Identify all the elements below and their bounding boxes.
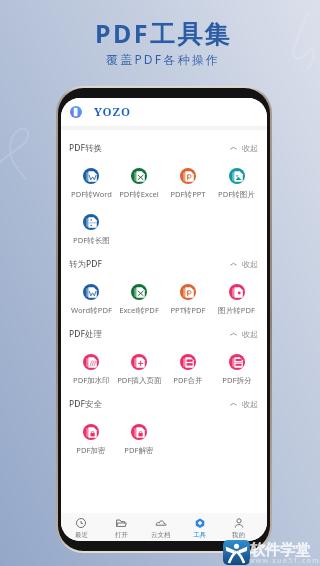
staticText: PDF处理: [69, 328, 102, 340]
button[interactable]: 云文档: [141, 513, 180, 539]
staticText: 覆盖PDF各种操作: [106, 51, 221, 67]
staticText: YOZO: [94, 104, 131, 120]
staticText: PDF转Word: [71, 189, 112, 199]
button[interactable]: 收起: [228, 397, 260, 411]
button[interactable]: Excel转PDF: [115, 276, 163, 315]
button[interactable]: 打开: [101, 513, 141, 539]
staticText: 工具: [193, 531, 206, 539]
staticText: 最近: [75, 531, 88, 539]
button[interactable]: 最近: [61, 513, 101, 539]
button[interactable]: 我的: [219, 513, 258, 539]
staticText: PDF转Excel: [119, 189, 159, 199]
staticText: PDF转长图: [73, 235, 110, 245]
staticText: 云文档: [151, 531, 171, 539]
staticText: PDF合并: [173, 375, 203, 385]
staticText: PDF转换: [69, 142, 102, 154]
staticText: 收起: [242, 399, 258, 409]
staticText: PDF拆分: [222, 375, 252, 385]
button[interactable]: PDF合并: [163, 346, 212, 385]
button[interactable]: 收起: [228, 257, 260, 271]
button[interactable]: PPT转PDF: [163, 276, 212, 315]
button[interactable]: PDF加水印: [67, 346, 115, 385]
staticText: PDF转图片: [218, 189, 255, 199]
staticText: 软件学堂: [250, 541, 310, 560]
button[interactable]: PDF转图片: [212, 160, 261, 199]
button[interactable]: PDF转长图: [67, 206, 115, 245]
button[interactable]: 工具: [180, 513, 219, 539]
button[interactable]: PDF插入页面: [115, 346, 163, 385]
staticText: 图片转PDF: [218, 305, 255, 315]
staticText: PDF插入页面: [117, 375, 162, 385]
button[interactable]: PDF解密: [115, 416, 163, 455]
button[interactable]: PDF拆分: [212, 346, 261, 385]
button[interactable]: PDF加密: [67, 416, 115, 455]
staticText: PPT转PDF: [170, 305, 206, 315]
staticText: 打开: [115, 531, 128, 539]
staticText: PDF加密: [76, 445, 106, 455]
staticText: 我的: [232, 531, 245, 539]
staticText: 收起: [242, 329, 258, 339]
staticText: Excel转PDF: [119, 305, 159, 315]
button[interactable]: 图片转PDF: [212, 276, 261, 315]
button[interactable]: PDF转PPT: [163, 160, 212, 199]
button[interactable]: PDF转Excel: [115, 160, 163, 199]
staticText: PDF工具集: [95, 16, 232, 50]
button[interactable]: PDF转Word: [67, 160, 115, 199]
button[interactable]: Word转PDF: [67, 276, 115, 315]
button[interactable]: 收起: [228, 327, 260, 341]
staticText: PDF加水印: [73, 375, 110, 385]
staticText: PDF转PPT: [170, 189, 206, 199]
staticText: 转为PDF: [69, 258, 102, 270]
staticText: 收起: [242, 259, 258, 269]
staticText: Word转PDF: [71, 305, 112, 315]
staticText: 收起: [242, 143, 258, 153]
staticText: PDF安全: [69, 398, 102, 410]
staticText: PDF解密: [124, 445, 154, 455]
staticText: www.xue51.com: [249, 556, 320, 566]
button[interactable]: 收起: [228, 141, 260, 155]
